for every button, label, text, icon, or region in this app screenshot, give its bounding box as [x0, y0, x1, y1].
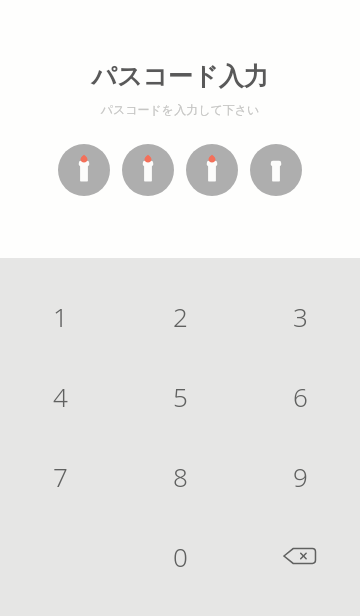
button[interactable]: 8 [120, 436, 240, 516]
button[interactable]: 1 [0, 276, 120, 356]
staticText: 8 [173, 459, 188, 494]
button[interactable]: 9 [240, 436, 360, 516]
button[interactable]: 3 [240, 276, 360, 356]
button[interactable]: 5 [120, 356, 240, 436]
staticText: 6 [293, 379, 308, 414]
staticText: パスコード入力 [0, 61, 360, 92]
staticText: パスコードを入力して下さい [0, 102, 360, 117]
staticText: 1 [53, 299, 68, 334]
staticText: 7 [53, 459, 68, 494]
staticText: 2 [173, 299, 188, 334]
staticText: 0 [173, 539, 188, 574]
button[interactable]: 2 [120, 276, 240, 356]
button[interactable]: 6 [240, 356, 360, 436]
button[interactable]: 4 [0, 356, 120, 436]
staticText: 4 [53, 379, 68, 414]
button[interactable]: 0 [120, 516, 240, 596]
staticText: 3 [293, 299, 308, 334]
staticText: 5 [173, 379, 188, 414]
button[interactable]: 7 [0, 436, 120, 516]
button[interactable]: Delete [240, 516, 360, 596]
staticText: 9 [293, 459, 308, 494]
